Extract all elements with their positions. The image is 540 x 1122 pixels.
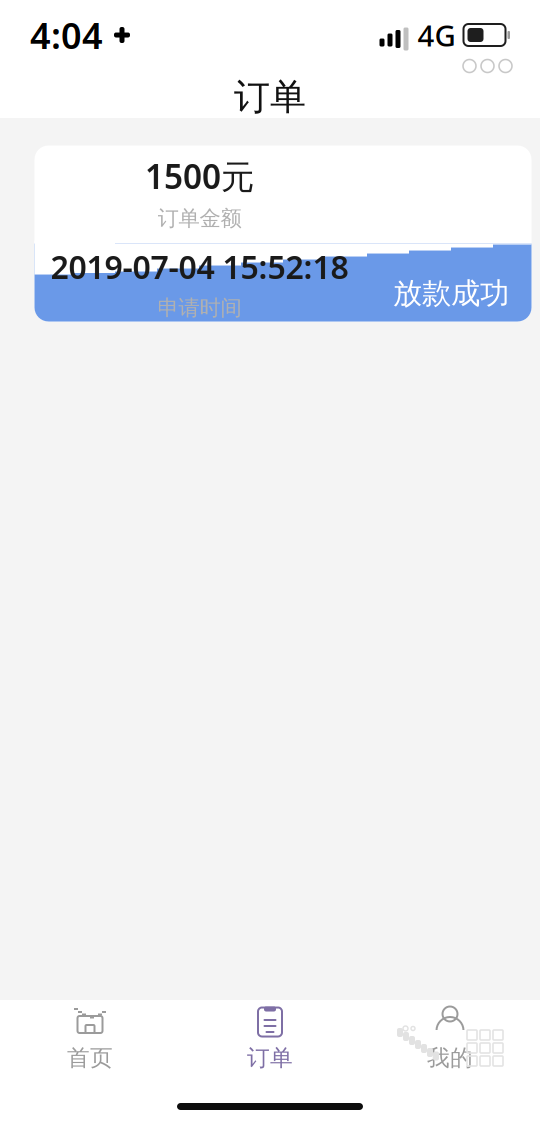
staticText: 4G bbox=[417, 15, 455, 54]
staticText: 放款成功 bbox=[393, 275, 509, 311]
staticText: 首页 bbox=[67, 1044, 113, 1072]
staticText: 订单 bbox=[234, 75, 306, 119]
button[interactable]: 我的 bbox=[360, 1006, 540, 1084]
staticText: 订单金额 bbox=[157, 205, 241, 231]
staticText: 2019-07-04 15:52:18 bbox=[50, 245, 348, 288]
button[interactable]: 放款成功 bbox=[8, 145, 531, 321]
staticText: 我的 bbox=[427, 1044, 473, 1072]
button[interactable]: 订单 bbox=[180, 1006, 360, 1084]
staticText: 1500元 bbox=[145, 154, 254, 198]
staticText: 4:04 bbox=[30, 11, 103, 59]
button[interactable]: 首页 bbox=[0, 1006, 180, 1084]
staticText: 订单 bbox=[247, 1044, 293, 1072]
staticText: 申请时间 bbox=[157, 295, 241, 321]
